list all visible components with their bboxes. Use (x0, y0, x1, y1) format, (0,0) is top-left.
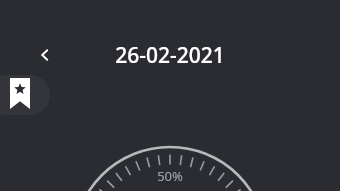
staticText: 26-02-2021 (115, 41, 225, 67)
button[interactable]: Bookmark (0, 75, 50, 115)
button[interactable]: Back (32, 42, 58, 68)
staticText: 50% (150, 167, 190, 185)
